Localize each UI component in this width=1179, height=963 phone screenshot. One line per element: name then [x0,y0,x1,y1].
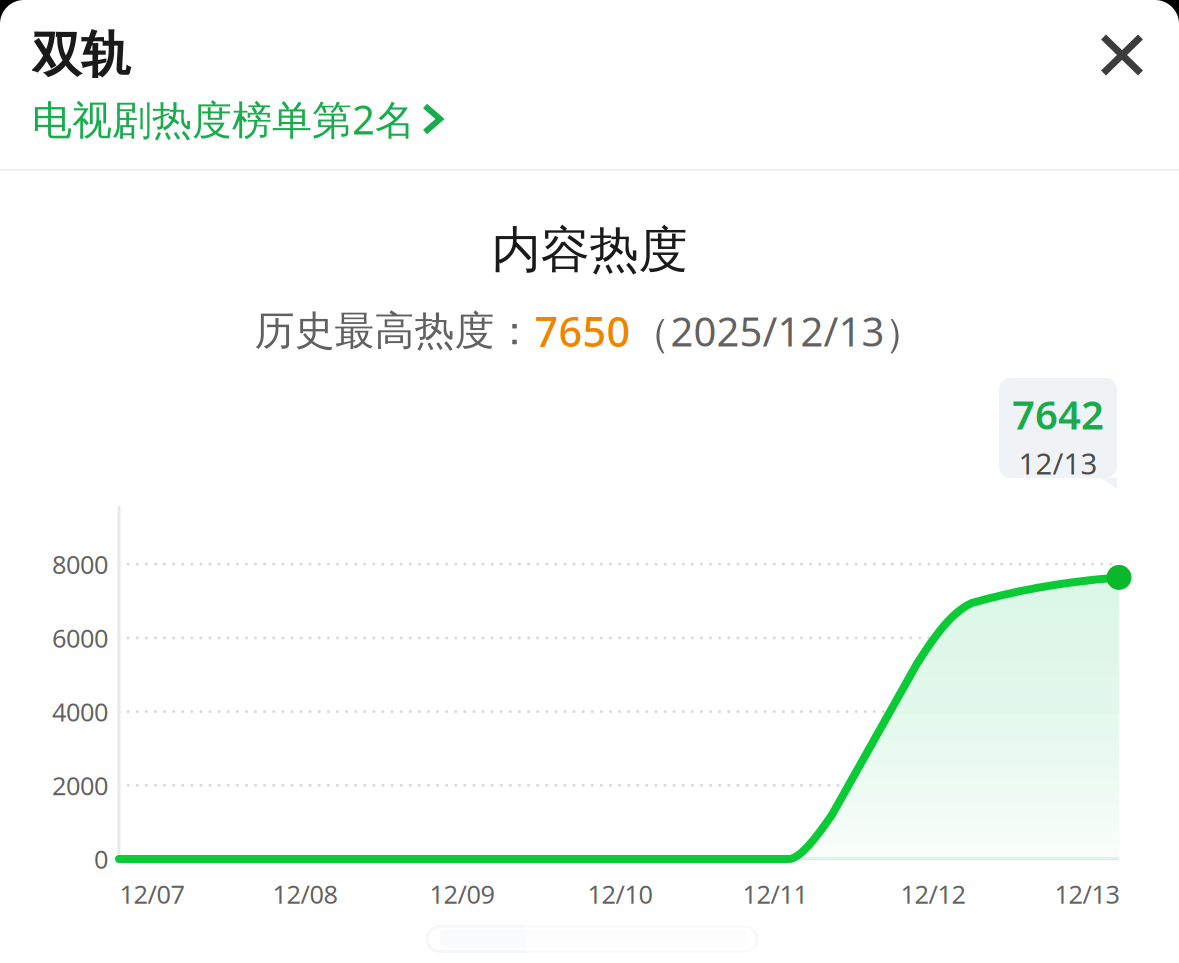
staticText: 双轨 [32,25,130,85]
staticText: 6000 [52,621,108,655]
staticText: 12/13 [1054,877,1119,911]
staticText: 2000 [52,768,108,802]
staticText: 电视剧热度榜单第2名 [32,92,415,145]
staticText: 12/08 [272,877,337,911]
staticText: 历史最高热度： [254,306,534,355]
staticText: 7650 [534,304,630,358]
staticText: 12/13 [1018,444,1097,483]
staticText: 8000 [52,547,108,581]
staticText: 7642 [1012,387,1104,441]
staticText: （2025/12/13） [630,304,924,358]
staticText: 内容热度 [491,220,687,280]
staticText: 12/11 [742,877,807,911]
staticText: 12/09 [429,877,494,911]
staticText: 12/10 [587,877,652,911]
button[interactable]: Close [1080,13,1164,97]
staticText: 12/12 [900,877,965,911]
staticText: 4000 [52,695,108,728]
button[interactable]: 电视剧热度榜单第2名 [32,92,440,145]
staticText: 0 [94,842,108,876]
staticText: 12/07 [119,877,184,911]
